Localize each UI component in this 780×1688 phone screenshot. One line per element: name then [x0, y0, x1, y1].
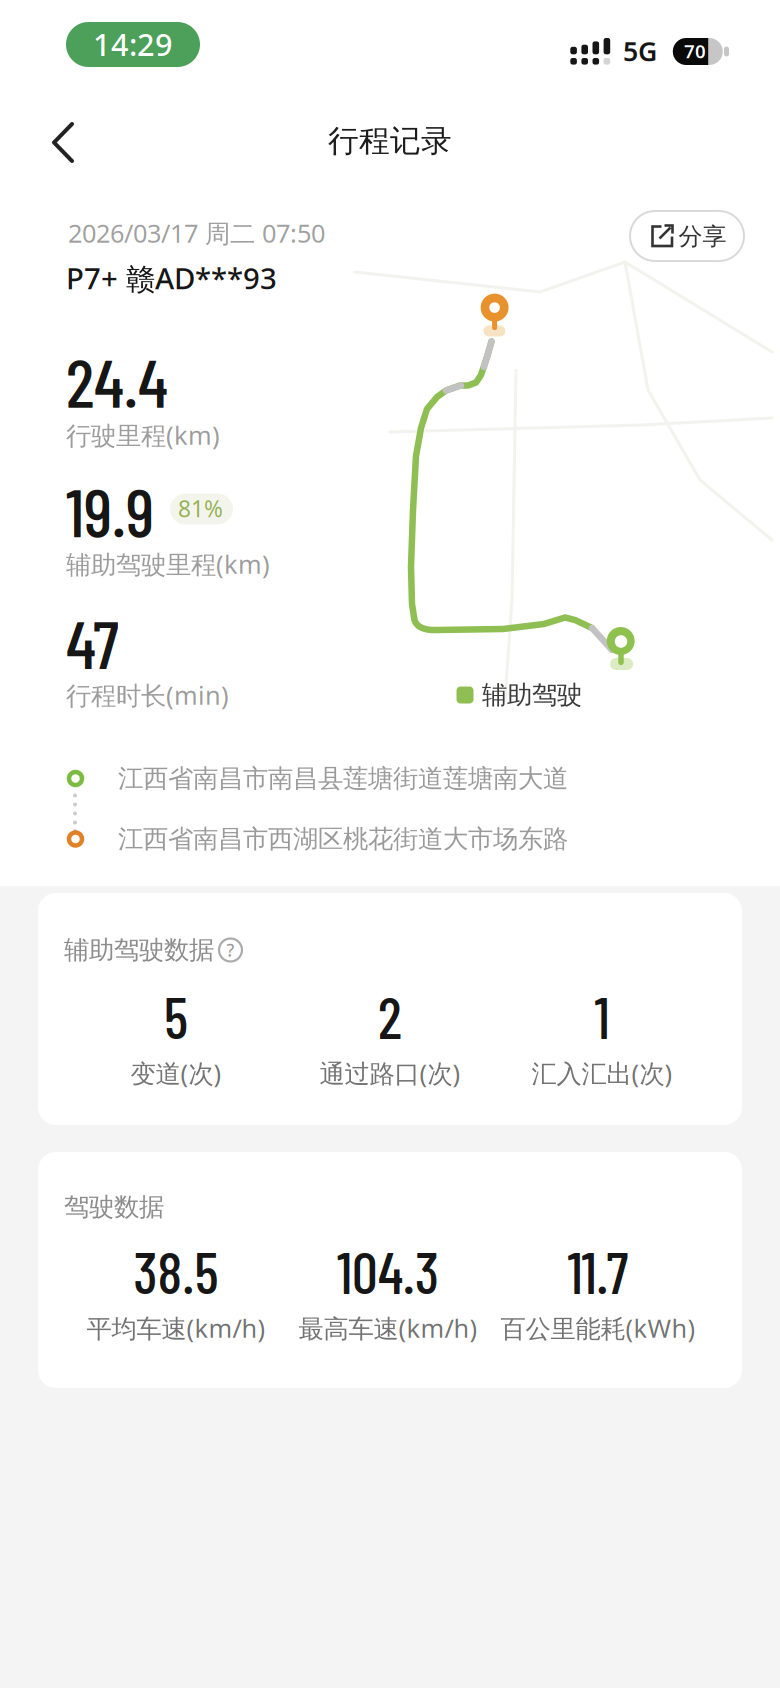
staticText: 行程记录: [328, 122, 452, 160]
staticText: 38.5: [133, 1237, 218, 1305]
staticText: P7+ 赣AD***93: [66, 258, 277, 297]
staticText: 11.7: [567, 1237, 628, 1305]
staticText: 19.9: [66, 469, 154, 551]
staticText: 百公里能耗(kWh): [500, 1311, 695, 1345]
staticText: 辅助驾驶数据: [64, 934, 214, 965]
staticText: 47: [66, 601, 119, 683]
staticText: 江西省南昌市南昌县莲塘街道莲塘南大道: [118, 763, 568, 794]
staticText: 辅助驾驶: [482, 679, 582, 710]
staticText: 汇入汇出(次): [531, 1056, 672, 1090]
staticText: 104.3: [337, 1237, 439, 1305]
staticText: 变道(次): [130, 1056, 221, 1090]
button[interactable]: ?: [215, 935, 245, 965]
staticText: 江西省南昌市西湖区桃花街道大市场东路: [118, 823, 568, 854]
staticText: 通过路口(次): [319, 1056, 460, 1090]
staticText: 行程时长(min): [66, 678, 229, 712]
button[interactable]: 分享: [630, 211, 744, 261]
staticText: 最高车速(km/h): [298, 1311, 477, 1345]
staticText: 5G: [623, 33, 657, 69]
staticText: 行驶里程(km): [66, 418, 220, 452]
staticText: 2: [378, 982, 402, 1050]
staticText: 24.4: [66, 340, 168, 421]
staticText: 81%: [178, 493, 223, 523]
staticText: 2026/03/17 周二 07:50: [68, 216, 325, 250]
staticText: 驾驶数据: [64, 1191, 164, 1222]
staticText: 70: [684, 39, 706, 63]
button[interactable]: [42, 121, 86, 165]
staticText: 1: [594, 982, 609, 1050]
staticText: ?: [226, 938, 234, 961]
staticText: 平均车速(km/h): [86, 1311, 265, 1345]
staticText: 14:29: [93, 24, 173, 64]
staticText: 分享: [678, 222, 726, 251]
staticText: 5: [164, 982, 188, 1050]
staticText: 辅助驾驶里程(km): [66, 547, 270, 581]
